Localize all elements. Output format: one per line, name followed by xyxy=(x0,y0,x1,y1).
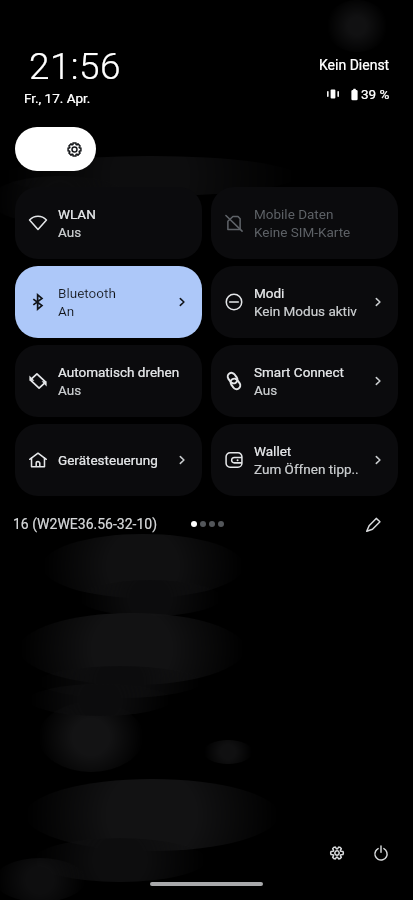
staticText: Kein Dienst xyxy=(319,57,390,73)
staticText: Kein Modus aktiv xyxy=(254,303,357,319)
button[interactable]: Bluetooth xyxy=(15,266,202,338)
staticText: An xyxy=(58,303,75,319)
staticText: Smart Connect xyxy=(254,364,344,380)
button[interactable]: Ein/Aus xyxy=(359,831,403,875)
button[interactable]: Einstellungen xyxy=(315,831,359,875)
button[interactable]: Smart Connect xyxy=(211,345,398,417)
staticText: Aus xyxy=(58,382,82,398)
staticText: Wallet xyxy=(254,443,292,459)
button[interactable]: Automatisch drehen xyxy=(15,345,202,417)
staticText: Aus xyxy=(58,224,82,240)
button[interactable]: WLAN xyxy=(15,187,202,259)
staticText: 21:56 xyxy=(29,45,121,88)
staticText: Gerätesteuerung xyxy=(58,452,158,468)
staticText: Automatisch drehen xyxy=(58,364,180,380)
staticText: Modi xyxy=(254,285,285,301)
staticText: Mobile Daten xyxy=(254,206,334,222)
button[interactable]: Wallet xyxy=(211,424,398,496)
button[interactable]: Bearbeiten xyxy=(357,508,389,540)
staticText: Bluetooth xyxy=(58,285,116,301)
button[interactable]: Brightness xyxy=(15,127,96,171)
staticText: Keine SIM-Karte xyxy=(254,224,351,240)
staticText: Zum Öffnen tipp.. xyxy=(254,461,359,477)
button[interactable]: Mobile Daten xyxy=(211,187,398,259)
staticText: Aus xyxy=(254,382,278,398)
staticText: Fr., 17. Apr. xyxy=(24,90,91,106)
button[interactable]: Modi xyxy=(211,266,398,338)
staticText: WLAN xyxy=(58,206,96,222)
button[interactable]: Gerätesteuerung xyxy=(15,424,202,496)
staticText: 39 % xyxy=(361,86,390,102)
staticText: 16 (W2WE36.56-32-10) xyxy=(13,516,158,532)
